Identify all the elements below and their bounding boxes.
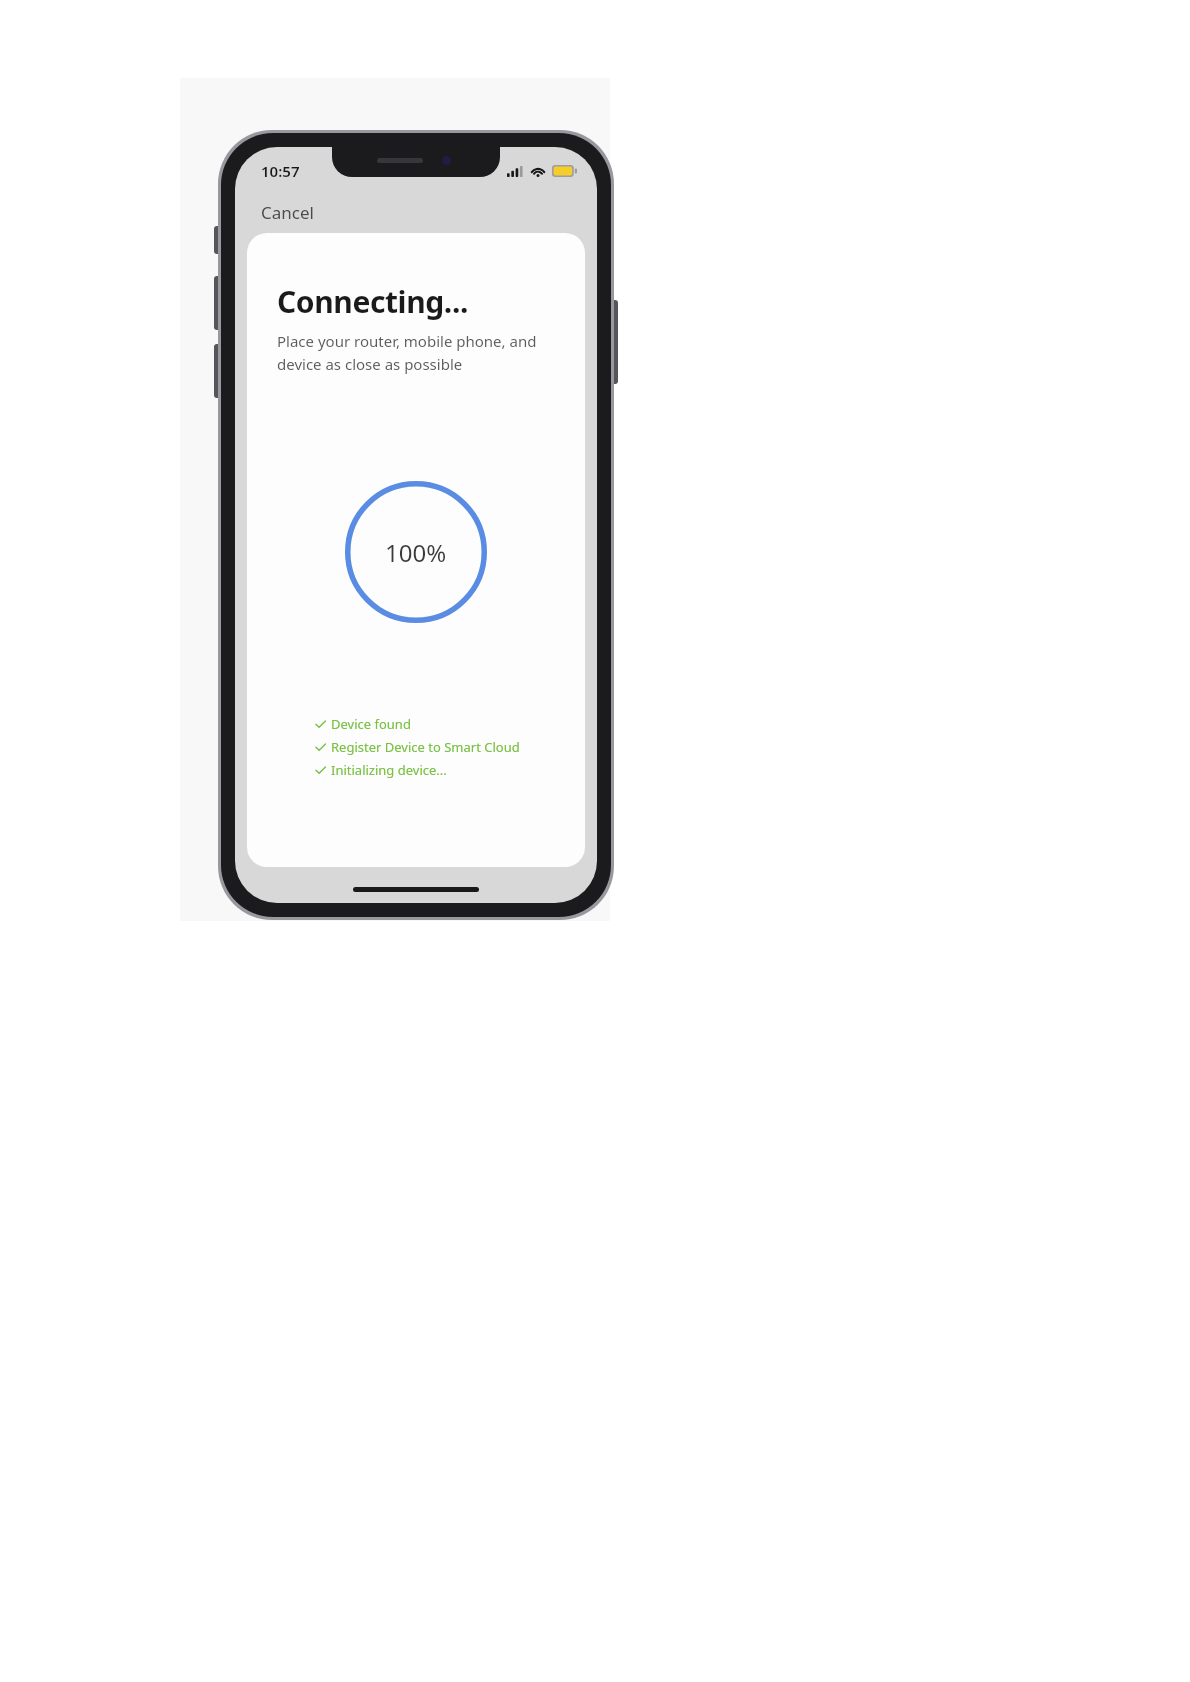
staticText: 100% (385, 536, 447, 569)
staticText: Initializing device... (331, 761, 447, 779)
staticText: Place your router, mobile phone, and dev… (277, 331, 537, 374)
staticText: Device found (331, 715, 411, 733)
staticText: 10:57 (261, 161, 300, 181)
button[interactable]: Cancel (247, 193, 328, 232)
staticText: Cancel (261, 201, 314, 224)
staticText: Connecting... (277, 281, 468, 322)
staticText: Register Device to Smart Cloud (331, 738, 520, 756)
